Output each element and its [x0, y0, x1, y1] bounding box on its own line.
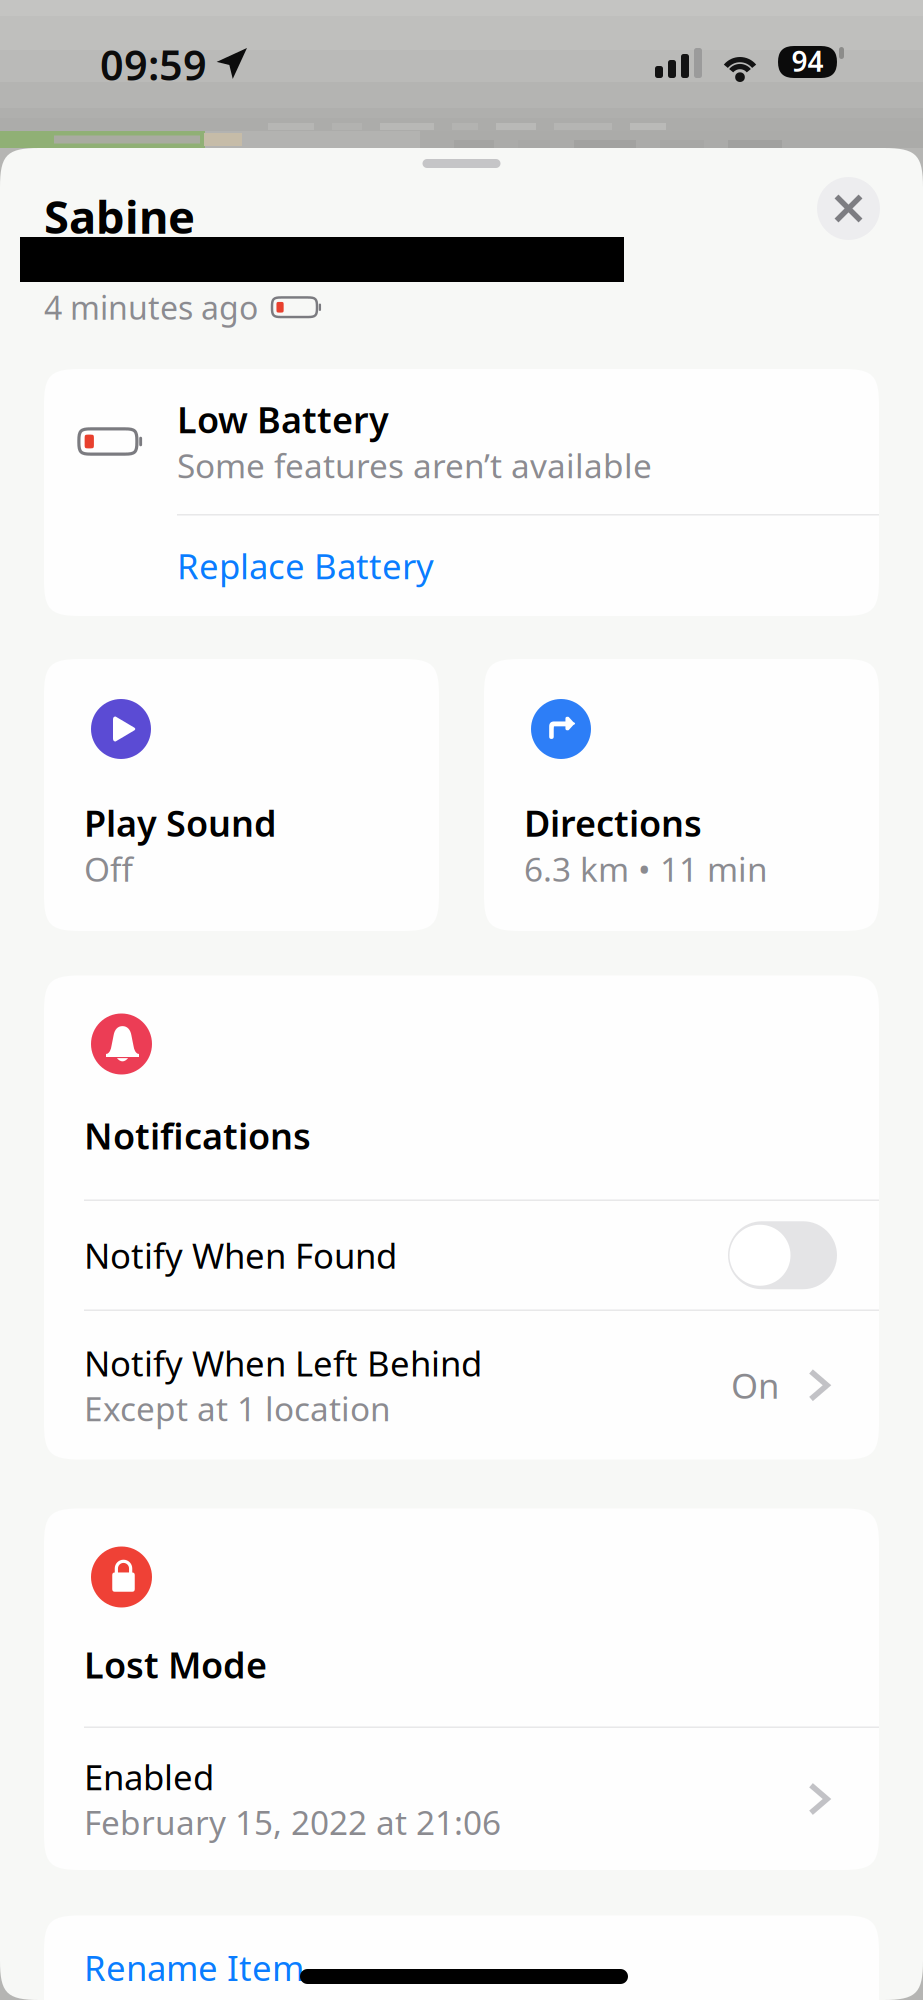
staticText: Enabled: [84, 1754, 214, 1800]
button[interactable]: Notify When Found: [44, 1201, 879, 1309]
staticText: 6.3 km • 11 min: [524, 847, 768, 891]
staticText: Some features aren’t available: [177, 443, 652, 488]
staticText: Play Sound: [84, 799, 277, 847]
staticText: Notify When Found: [84, 1232, 397, 1278]
staticText: Notify When Left Behind: [84, 1340, 482, 1386]
staticText: Low Battery: [177, 395, 389, 443]
button[interactable]: Replace Battery: [44, 515, 879, 616]
staticText: On: [731, 1362, 779, 1408]
staticText: Lost Mode: [84, 1641, 267, 1688]
staticText: Except at 1 location: [84, 1386, 391, 1430]
button[interactable]: Close: [817, 177, 880, 240]
button[interactable]: Notify When Left Behind: [44, 1311, 879, 1459]
staticText: 09:59: [100, 37, 207, 92]
staticText: Directions: [524, 799, 702, 847]
staticText: 4 minutes ago: [44, 286, 258, 328]
button[interactable]: Play Sound: [44, 659, 439, 931]
button[interactable]: Directions: [484, 659, 879, 931]
staticText: Replace Battery: [177, 543, 434, 589]
staticText: Off: [84, 847, 133, 891]
button[interactable]: Rename Item: [44, 1915, 879, 2000]
staticText: Sabine: [44, 186, 195, 246]
staticText: 94: [791, 42, 823, 80]
staticText: February 15, 2022 at 21:06: [84, 1800, 501, 1844]
button[interactable]: Enabled: [44, 1728, 879, 1870]
staticText: Notifications: [84, 1112, 311, 1159]
staticText: Rename Item: [84, 1944, 304, 1990]
